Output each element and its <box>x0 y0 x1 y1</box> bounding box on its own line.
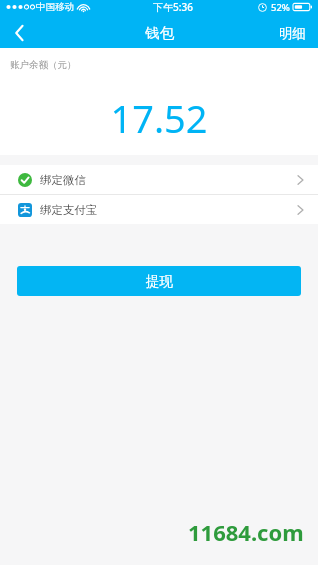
staticText: 下午5:36 <box>153 0 193 14</box>
button[interactable]: 明细 <box>267 18 318 48</box>
staticText: 钱包 <box>145 24 174 42</box>
staticText: 绑定微信 <box>40 173 86 187</box>
staticText: 中国移动 <box>36 1 74 13</box>
staticText: 17.52 <box>0 92 318 144</box>
staticText: 11684.com <box>188 517 304 547</box>
button[interactable]: Back <box>0 18 38 48</box>
button[interactable]: 绑定支付宝 <box>0 195 318 224</box>
staticText: 绑定支付宝 <box>40 203 98 217</box>
button[interactable]: 提现 <box>17 266 301 296</box>
staticText: 明细 <box>279 25 306 42</box>
staticText: 账户余额（元） <box>10 59 77 71</box>
staticText: 提现 <box>146 273 173 290</box>
staticText: 52% <box>271 1 290 14</box>
button[interactable]: 绑定微信 <box>0 165 318 194</box>
